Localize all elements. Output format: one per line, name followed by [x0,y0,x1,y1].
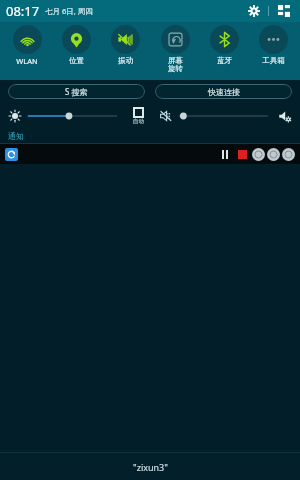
staticText: 位置 [69,56,84,65]
button[interactable]: Pause [0,144,300,164]
staticText: 工具箱 [262,56,285,65]
button[interactable]: 位置 [52,22,100,80]
staticText: "zixun3" [133,461,168,473]
button[interactable]: Brightness [5,106,25,126]
button[interactable]: 振动 [101,22,149,80]
button[interactable]: Action 3 [282,148,295,161]
staticText: S 搜索 [65,86,88,97]
button[interactable]: Action 2 [267,148,280,161]
button[interactable]: Pause [218,147,232,161]
staticText: 通知 [8,131,24,141]
button[interactable]: Action 1 [252,148,265,161]
button[interactable]: Edit quick settings [274,1,294,21]
staticText: 振动 [118,56,133,65]
button[interactable]: 屏幕 旋转 [151,22,199,80]
button[interactable] [25,106,120,126]
staticText: 08:17 [6,2,40,20]
button[interactable]: 快速连接 [155,84,292,99]
button[interactable]: 工具箱 [249,22,297,80]
staticText: 屏幕 旋转 [168,56,183,74]
button[interactable]: S 搜索 [8,84,145,99]
staticText: 自动 [133,118,144,125]
button[interactable]: Auto brightness [126,107,150,125]
button[interactable]: Record [235,147,249,161]
staticText: WLAN [16,56,38,66]
button[interactable] [176,106,271,126]
button[interactable]: WLAN [3,22,51,80]
button[interactable]: 蓝牙 [200,22,248,80]
staticText: 蓝牙 [217,56,232,65]
staticText: 七月 6日, 周四 [45,6,93,16]
button[interactable]: Settings [244,1,264,21]
button[interactable]: Sound settings [275,106,295,126]
button[interactable]: Mute [156,106,176,126]
staticText: 快速连接 [208,87,240,97]
